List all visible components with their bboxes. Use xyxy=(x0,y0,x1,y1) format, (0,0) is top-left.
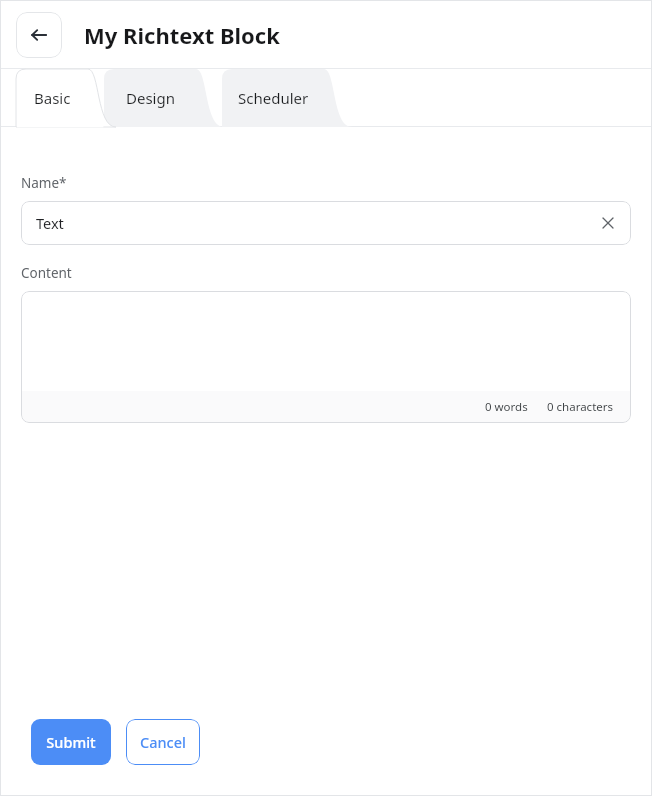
button[interactable]: Text xyxy=(21,201,631,245)
staticText: My Richtext Block xyxy=(84,20,280,50)
button[interactable]: Submit xyxy=(31,719,111,765)
button[interactable]: Cancel xyxy=(126,719,200,765)
staticText: Content xyxy=(21,264,72,282)
button[interactable]: Design xyxy=(104,69,196,127)
button[interactable]: Clear name xyxy=(597,212,619,234)
staticText: Design xyxy=(126,88,175,108)
button[interactable]: Back xyxy=(16,12,62,58)
staticText: Name* xyxy=(21,174,67,192)
staticText: Cancel xyxy=(140,732,186,752)
button[interactable]: Scheduler xyxy=(222,69,324,127)
staticText: 0 words xyxy=(485,399,528,415)
staticText: Scheduler xyxy=(238,88,309,108)
staticText: Text xyxy=(36,213,64,233)
button[interactable]: 0 words xyxy=(21,291,631,423)
staticText: Basic xyxy=(34,88,71,108)
staticText: 0 characters xyxy=(547,399,614,415)
staticText: Submit xyxy=(46,732,96,752)
button[interactable]: Basic xyxy=(16,69,88,127)
